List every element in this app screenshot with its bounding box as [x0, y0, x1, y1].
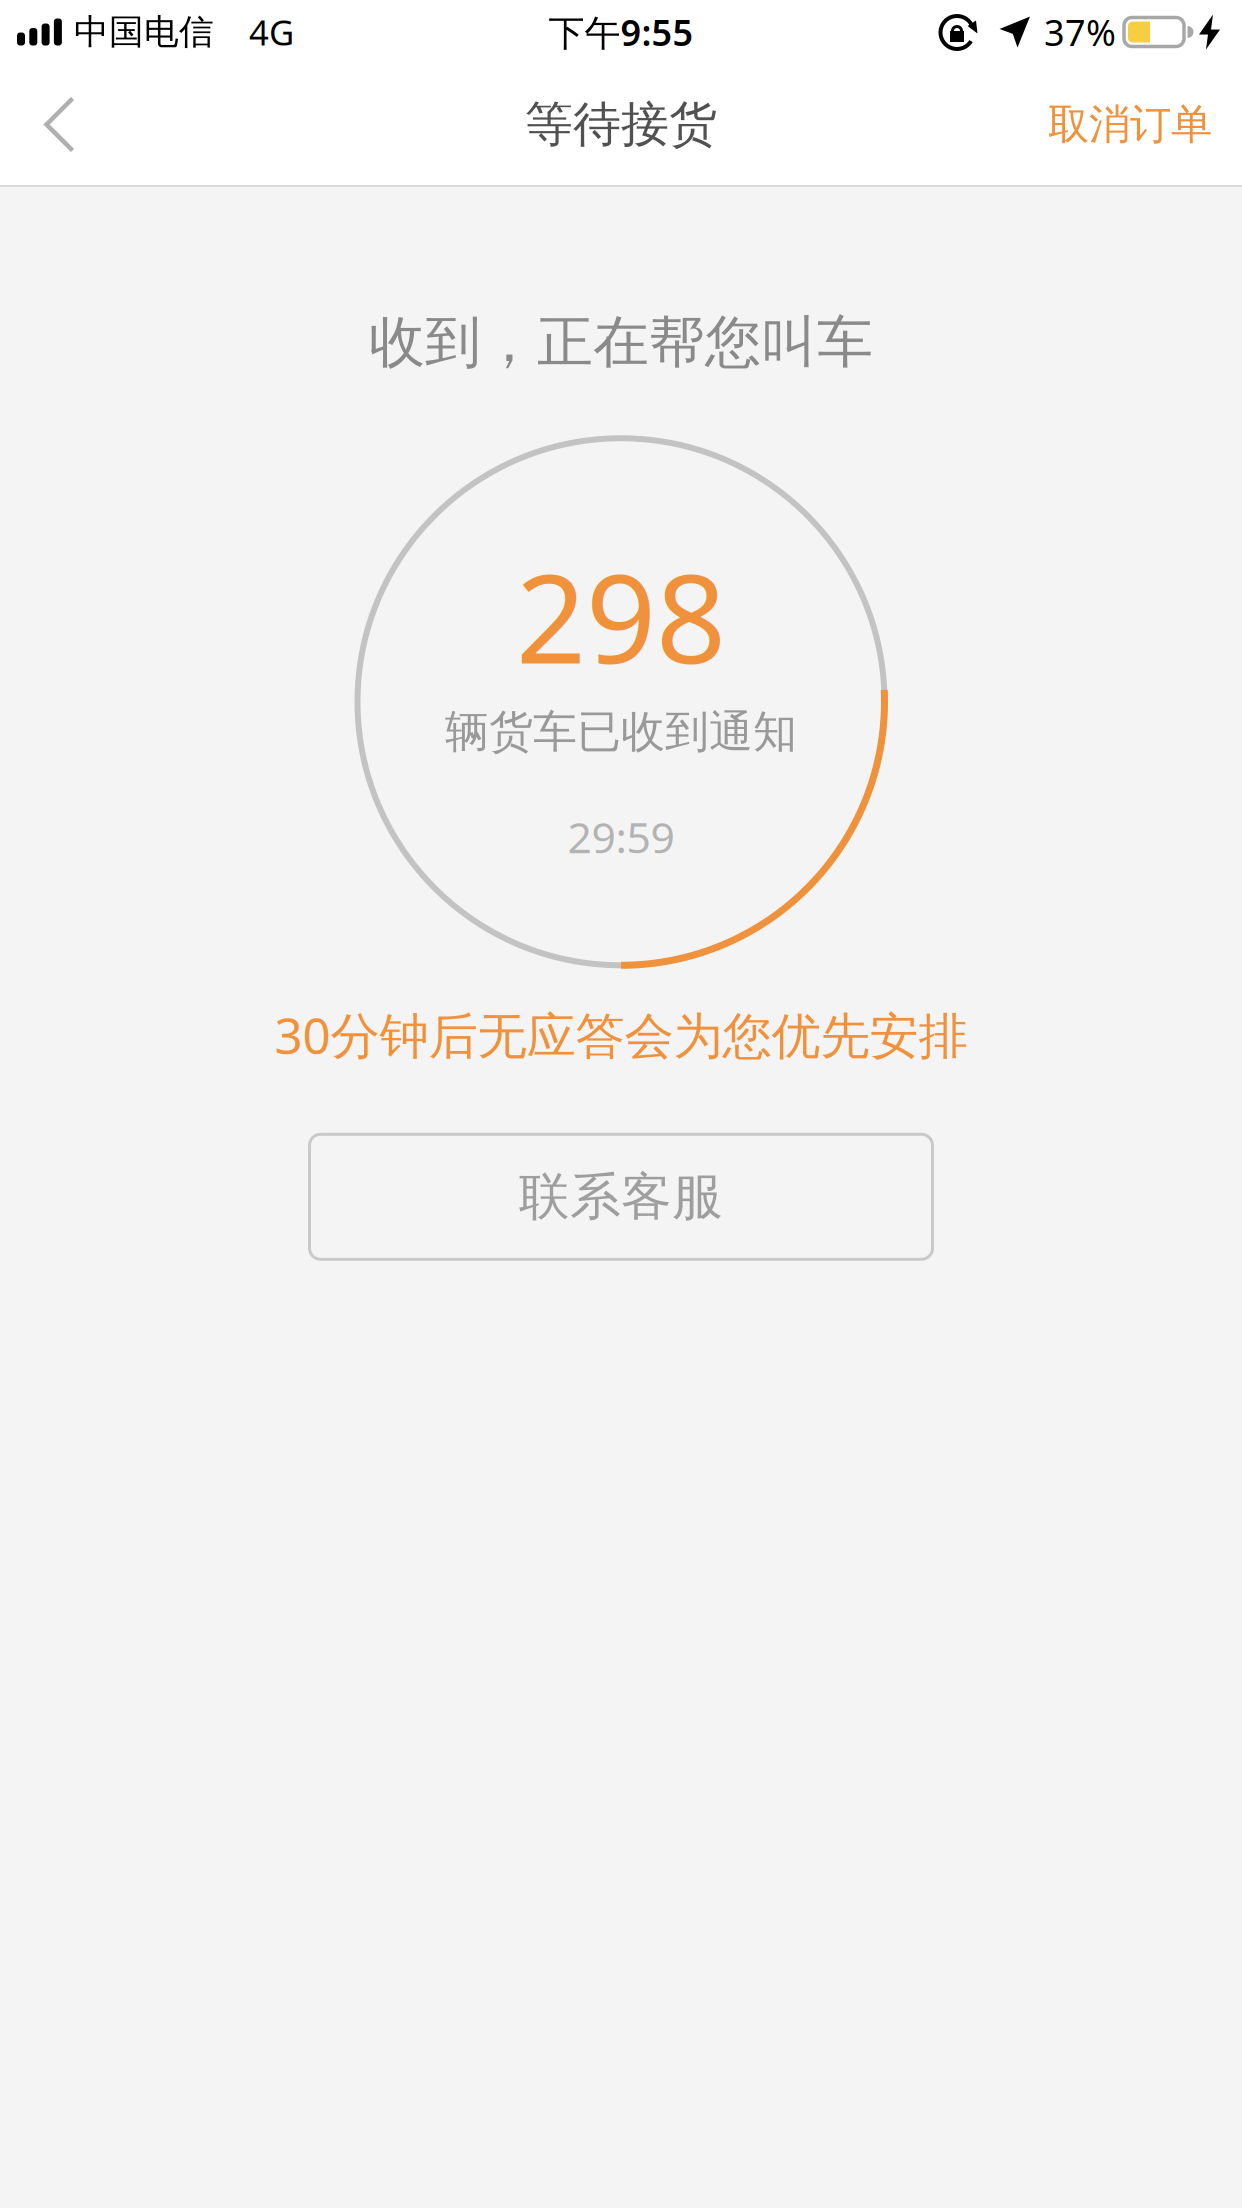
staticText: 收到，正在帮您叫车: [369, 308, 873, 377]
staticText: 下午9:55: [548, 8, 693, 56]
staticText: 辆货车已收到通知: [445, 705, 797, 759]
staticText: 4G: [249, 9, 294, 55]
button[interactable]: 返回: [0, 96, 105, 152]
staticText: 取消订单: [1048, 99, 1212, 150]
staticText: 联系客服: [519, 1166, 723, 1228]
staticText: 30分钟后无应答会为您优先安排: [274, 1002, 967, 1067]
button[interactable]: 联系客服: [309, 1134, 932, 1259]
staticText: 29:59: [567, 808, 674, 865]
staticText: 中国电信: [74, 11, 214, 53]
button[interactable]: 取消订单: [1048, 99, 1242, 150]
staticText: 等待接货: [525, 95, 717, 154]
staticText: 298: [516, 534, 726, 697]
staticText: 37%: [1044, 8, 1116, 56]
